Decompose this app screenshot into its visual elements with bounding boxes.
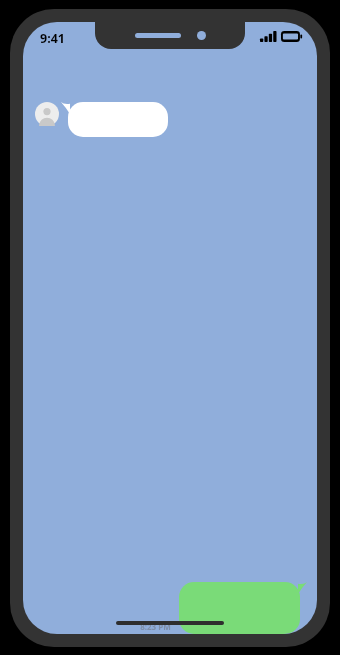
staticText: 9:41 [40,30,65,47]
button[interactable] [61,102,168,137]
button[interactable]: Contact avatar [35,102,59,126]
staticText: 8:23 PM [140,621,171,632]
button[interactable] [179,582,307,634]
